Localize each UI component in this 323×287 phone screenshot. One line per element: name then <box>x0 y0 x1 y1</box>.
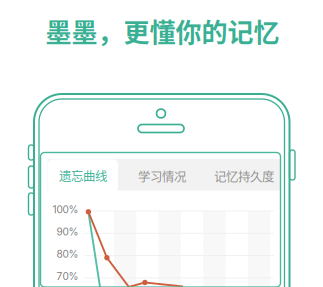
staticText: 80% <box>56 248 78 260</box>
staticText: 墨墨，更懂你的记忆 <box>45 12 279 50</box>
button[interactable]: 学习情况 <box>124 160 200 192</box>
staticText: 70% <box>56 270 78 283</box>
staticText: 记忆持久度 <box>214 167 274 185</box>
staticText: 遗忘曲线 <box>59 166 107 184</box>
staticText: 90% <box>56 226 78 238</box>
staticText: 100% <box>52 203 78 216</box>
button[interactable]: 记忆持久度 <box>201 160 287 192</box>
staticText: 学习情况 <box>138 167 186 185</box>
button[interactable]: 遗忘曲线 <box>48 159 118 191</box>
